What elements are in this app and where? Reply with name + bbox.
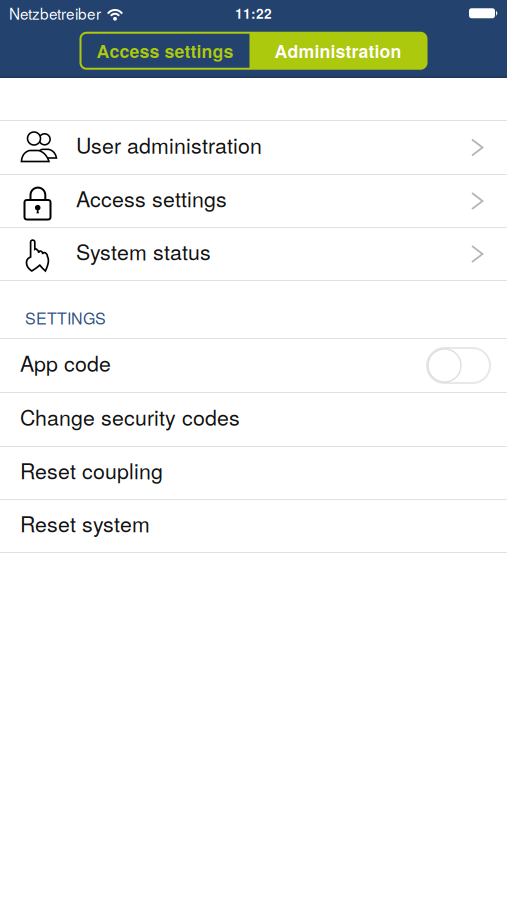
button[interactable]: User administration xyxy=(0,121,507,174)
button[interactable]: Change security codes xyxy=(0,393,507,446)
staticText: Access settings xyxy=(76,183,227,213)
button[interactable]: App code xyxy=(427,348,490,383)
staticText: Netzbetreiber xyxy=(9,2,101,24)
staticText: User administration xyxy=(76,129,262,160)
staticText: System status xyxy=(76,236,211,266)
staticText: Reset system xyxy=(20,508,150,538)
button[interactable]: System status xyxy=(0,228,507,280)
button[interactable]: Reset coupling xyxy=(0,447,507,499)
button[interactable]: Access settings xyxy=(0,175,507,227)
button[interactable]: Administration xyxy=(249,33,426,69)
staticText: Reset coupling xyxy=(20,455,163,485)
staticText: Access settings xyxy=(96,38,233,63)
staticText: SETTINGS xyxy=(25,306,106,329)
staticText: Administration xyxy=(274,38,401,63)
staticText: Change security codes xyxy=(20,401,240,432)
staticText: 11:22 xyxy=(235,3,272,23)
button[interactable]: Reset system xyxy=(0,500,507,552)
staticText: App code xyxy=(20,347,111,378)
button[interactable]: Access settings xyxy=(80,33,249,69)
